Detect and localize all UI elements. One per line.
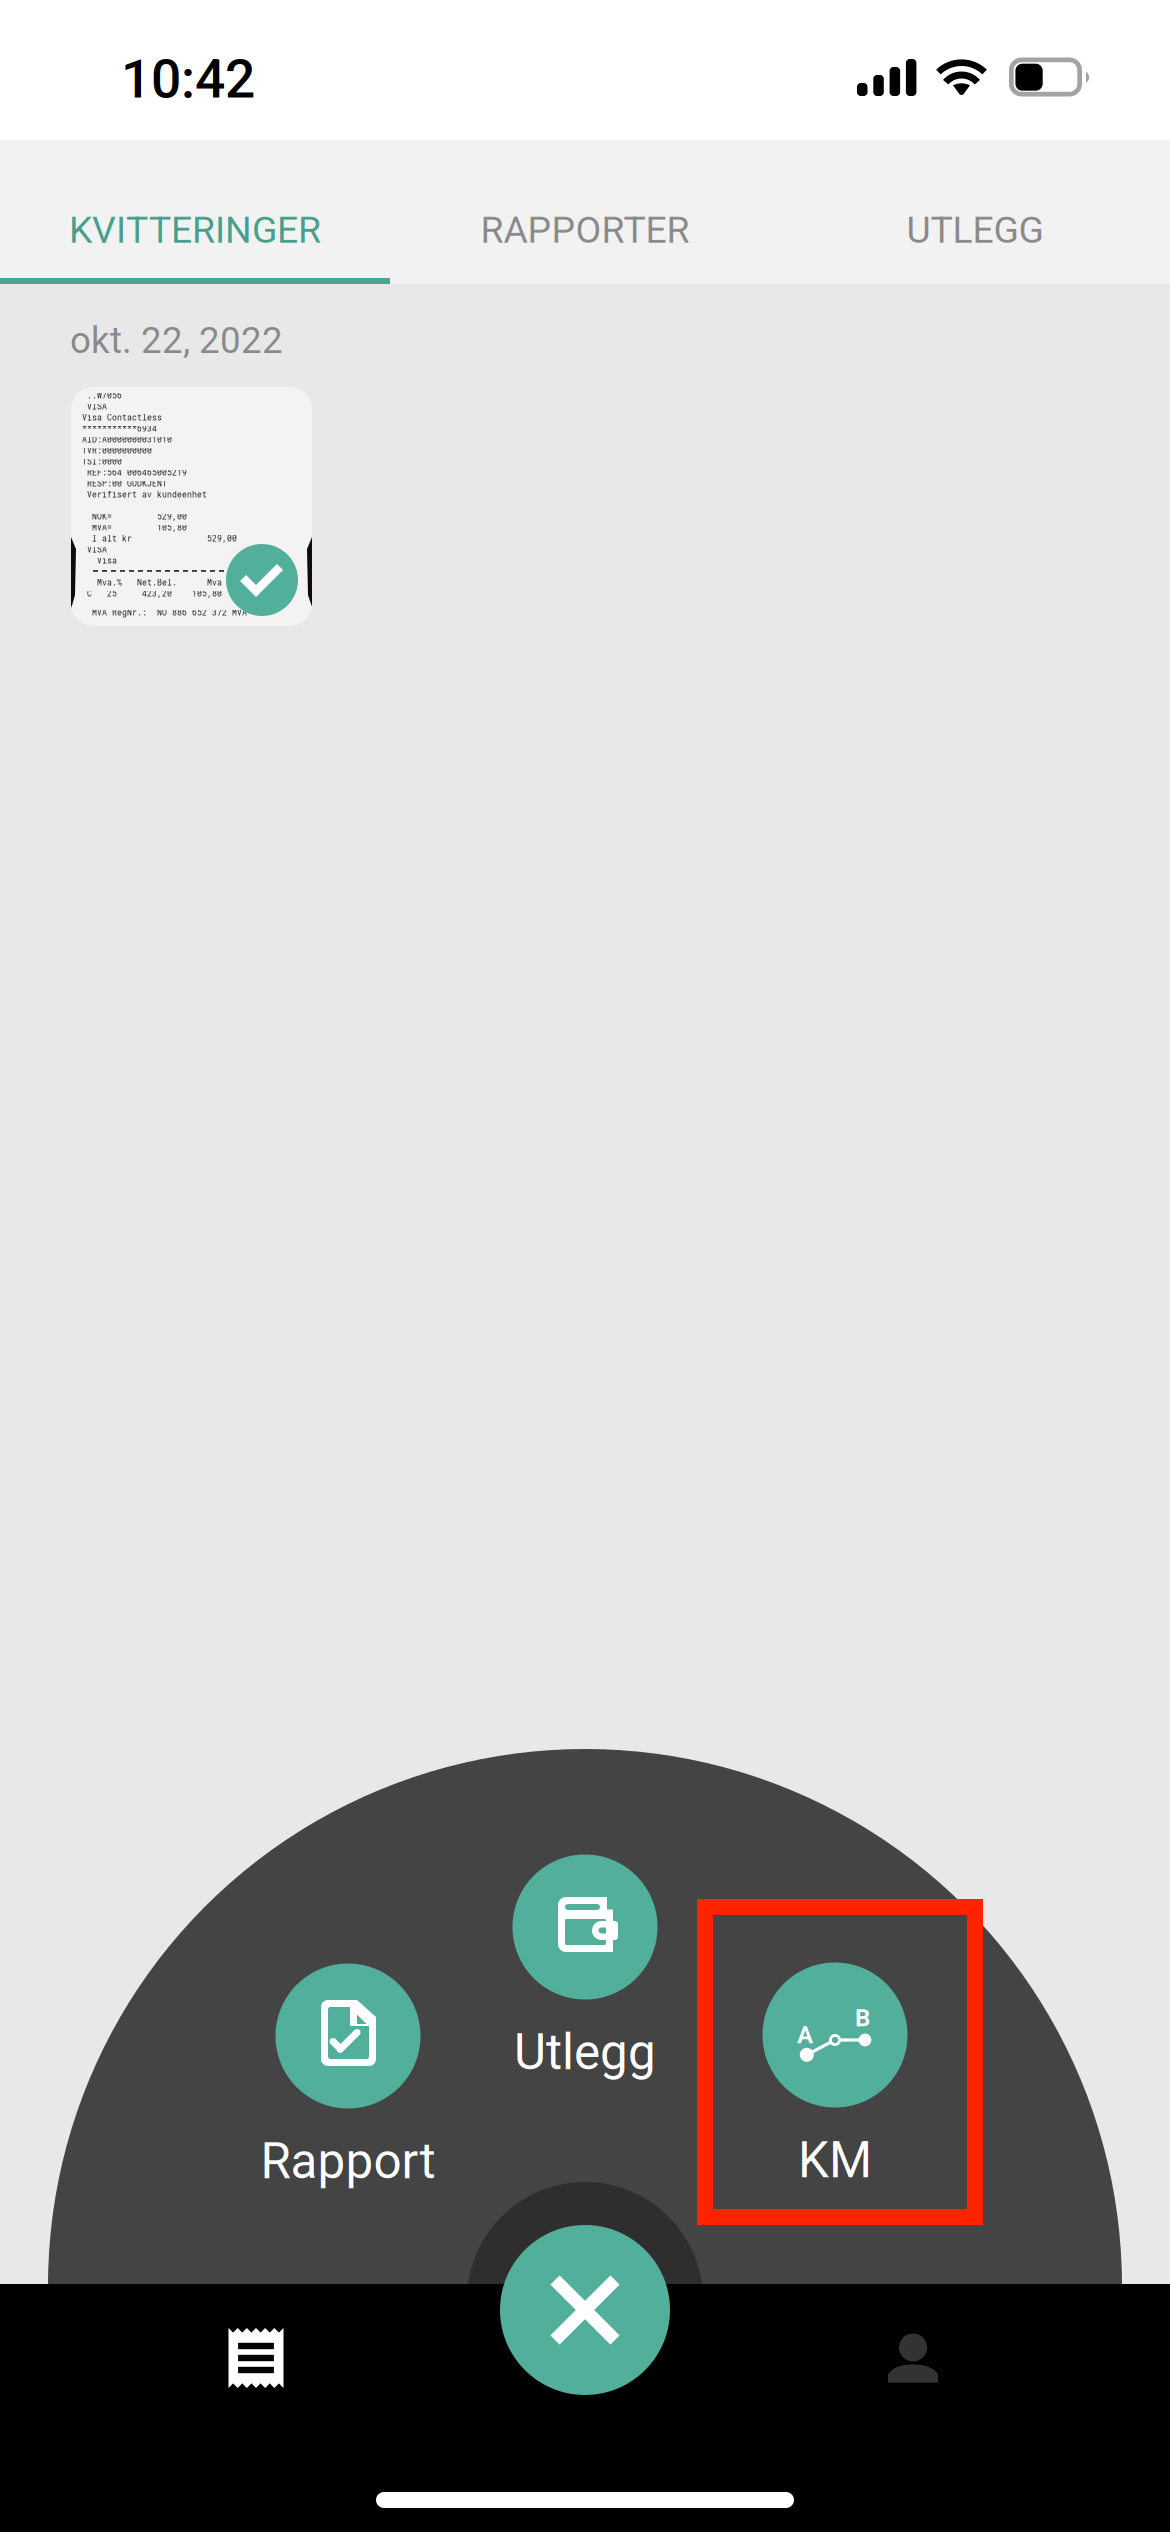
staticText: Mva.% Net.Bel. Mva <box>82 577 222 588</box>
staticText: C 25 423,20 105,80 <box>82 588 222 599</box>
staticText: ***********6934 <box>82 423 157 434</box>
button[interactable]: Kvitteringer <box>61 2284 451 2448</box>
staticText: RAPPORTER <box>480 208 689 252</box>
button[interactable]: KVITTERINGER <box>0 140 390 284</box>
button[interactable]: UTLEGG <box>780 140 1170 284</box>
staticText: MVA RegNr.: NO 886 652 372 MVA <box>82 607 247 618</box>
button[interactable]: A <box>690 1962 980 2212</box>
staticText: B <box>855 2004 870 2032</box>
staticText: ..W7056 <box>82 390 122 401</box>
staticText: A <box>797 2021 813 2049</box>
staticText: Visa <box>82 555 117 566</box>
staticText: TSI:0000 <box>82 456 122 467</box>
staticText: VISA <box>82 401 107 412</box>
staticText: Visa Contactless <box>82 412 162 423</box>
staticText: KVITTERINGER <box>69 208 321 252</box>
button[interactable]: Utlegg <box>440 1854 730 2104</box>
staticText: AID:A0000000031010 <box>82 434 172 445</box>
staticText: VISA <box>82 544 107 555</box>
staticText: 10:42 <box>121 48 255 110</box>
staticText: okt. 22, 2022 <box>70 319 283 362</box>
staticText: TVR:0000000000 <box>82 445 152 456</box>
staticText: UTLEGG <box>906 208 1043 252</box>
button[interactable]: Lukk <box>500 2225 670 2395</box>
staticText: RESP:00 GODKJENT <box>82 478 167 489</box>
staticText: REF:564 006465005219 <box>82 467 187 478</box>
button[interactable]: RAPPORTER <box>390 140 780 284</box>
button[interactable]: Rapport <box>203 1963 493 2213</box>
button[interactable]: Profil <box>718 2284 1108 2448</box>
button[interactable]: Kvittering okt. 22, 2022 <box>71 387 312 626</box>
staticText: MVA= 105,80 <box>82 522 187 533</box>
staticText: I alt kr 529,00 <box>82 533 237 544</box>
staticText: Verifisert av kundeenhet <box>82 489 207 500</box>
staticText: Utlegg <box>514 2024 656 2081</box>
staticText: Rapport <box>260 2133 435 2190</box>
staticText: KM <box>798 2132 872 2189</box>
staticText: NOK= 529,00 <box>82 511 187 522</box>
